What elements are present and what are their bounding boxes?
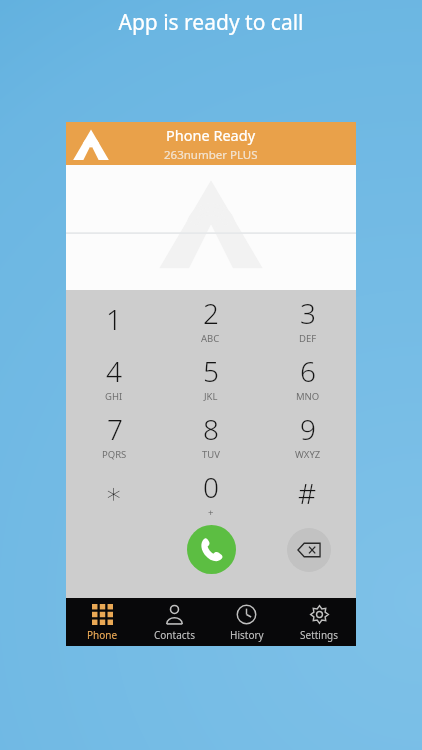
staticText: # [298, 474, 317, 512]
staticText: + [208, 506, 214, 519]
button[interactable]: # [259, 464, 356, 522]
staticText: 8 [203, 410, 219, 448]
button[interactable]: 2 [162, 290, 259, 348]
button[interactable]: 0 [162, 464, 259, 522]
staticText: 1 [106, 300, 122, 338]
staticText: ∗ [105, 477, 123, 510]
button[interactable]: Settings [283, 598, 356, 646]
button[interactable]: 5 [162, 348, 259, 406]
staticText: Phone Ready [166, 125, 256, 145]
button[interactable]: 1 [66, 290, 162, 348]
button[interactable]: 3 [259, 290, 356, 348]
staticText: TUV [202, 448, 220, 461]
staticText: 5 [203, 352, 219, 390]
staticText: Settings [300, 628, 339, 642]
button[interactable]: 6 [259, 348, 356, 406]
staticText: 4 [106, 352, 122, 390]
staticText: 6 [300, 352, 316, 390]
staticText: 9 [300, 410, 316, 448]
button[interactable]: 9 [259, 406, 356, 464]
button[interactable]: 4 [66, 348, 162, 406]
staticText: 2 [203, 294, 219, 332]
button[interactable]: Call [187, 525, 236, 574]
staticText: 3 [300, 294, 316, 332]
staticText: JKL [204, 390, 218, 403]
staticText: App is ready to call [118, 8, 304, 37]
staticText: 263number PLUS [164, 147, 258, 163]
staticText: MNO [296, 390, 320, 403]
button[interactable]: Delete [287, 528, 331, 572]
button[interactable]: ∗ [66, 464, 162, 522]
staticText: 7 [107, 410, 123, 448]
staticText: History [230, 628, 264, 642]
staticText: DEF [299, 332, 317, 345]
staticText: WXYZ [295, 448, 321, 461]
button[interactable]: 7 [66, 406, 162, 464]
staticText: GHI [105, 390, 123, 403]
button[interactable]: 8 [162, 406, 259, 464]
staticText: ABC [201, 332, 220, 345]
staticText: 0 [203, 468, 219, 506]
button[interactable]: Contacts [138, 598, 210, 646]
staticText: Contacts [154, 628, 195, 642]
staticText: PQRS [102, 448, 127, 461]
button[interactable]: History [210, 598, 283, 646]
staticText: Phone [87, 628, 118, 642]
button[interactable]: Phone [66, 598, 138, 646]
